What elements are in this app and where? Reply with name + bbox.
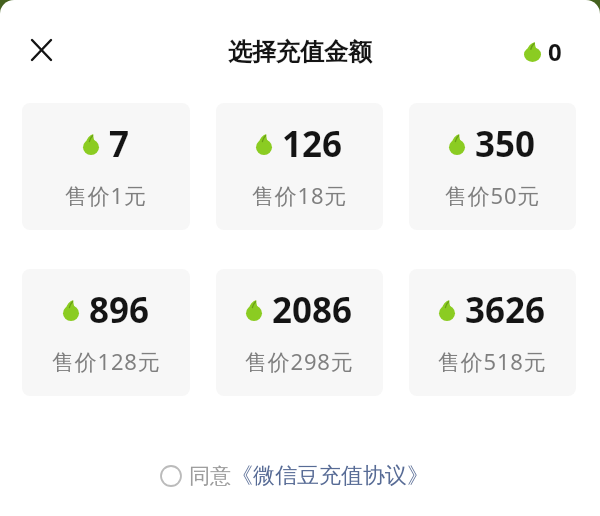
staticText: 售价1元	[65, 180, 147, 210]
button[interactable]: 3626	[409, 269, 576, 396]
staticText: 2086	[272, 286, 353, 334]
staticText: 《微信豆充值协议》	[231, 462, 429, 490]
staticText: 896	[89, 286, 150, 334]
button[interactable]: 同意	[0, 462, 594, 490]
button[interactable]: 126	[216, 103, 383, 230]
staticText: 126	[282, 120, 343, 168]
staticText: 售价298元	[245, 346, 354, 376]
staticText: 3626	[465, 286, 546, 334]
staticText: 同意	[189, 463, 231, 489]
button[interactable]: 350	[409, 103, 576, 230]
staticText: 0	[548, 35, 562, 68]
staticText: 售价50元	[445, 180, 541, 210]
staticText: 售价518元	[438, 346, 547, 376]
staticText: 售价128元	[52, 346, 161, 376]
button[interactable]: 2086	[216, 269, 383, 396]
button[interactable]: 896	[22, 269, 190, 396]
staticText: 350	[475, 120, 536, 168]
button[interactable]	[26, 35, 56, 65]
staticText: 售价18元	[252, 180, 348, 210]
button[interactable]: 7	[22, 103, 190, 230]
staticText: 选择充值金额	[228, 37, 372, 67]
staticText: 7	[109, 120, 130, 168]
